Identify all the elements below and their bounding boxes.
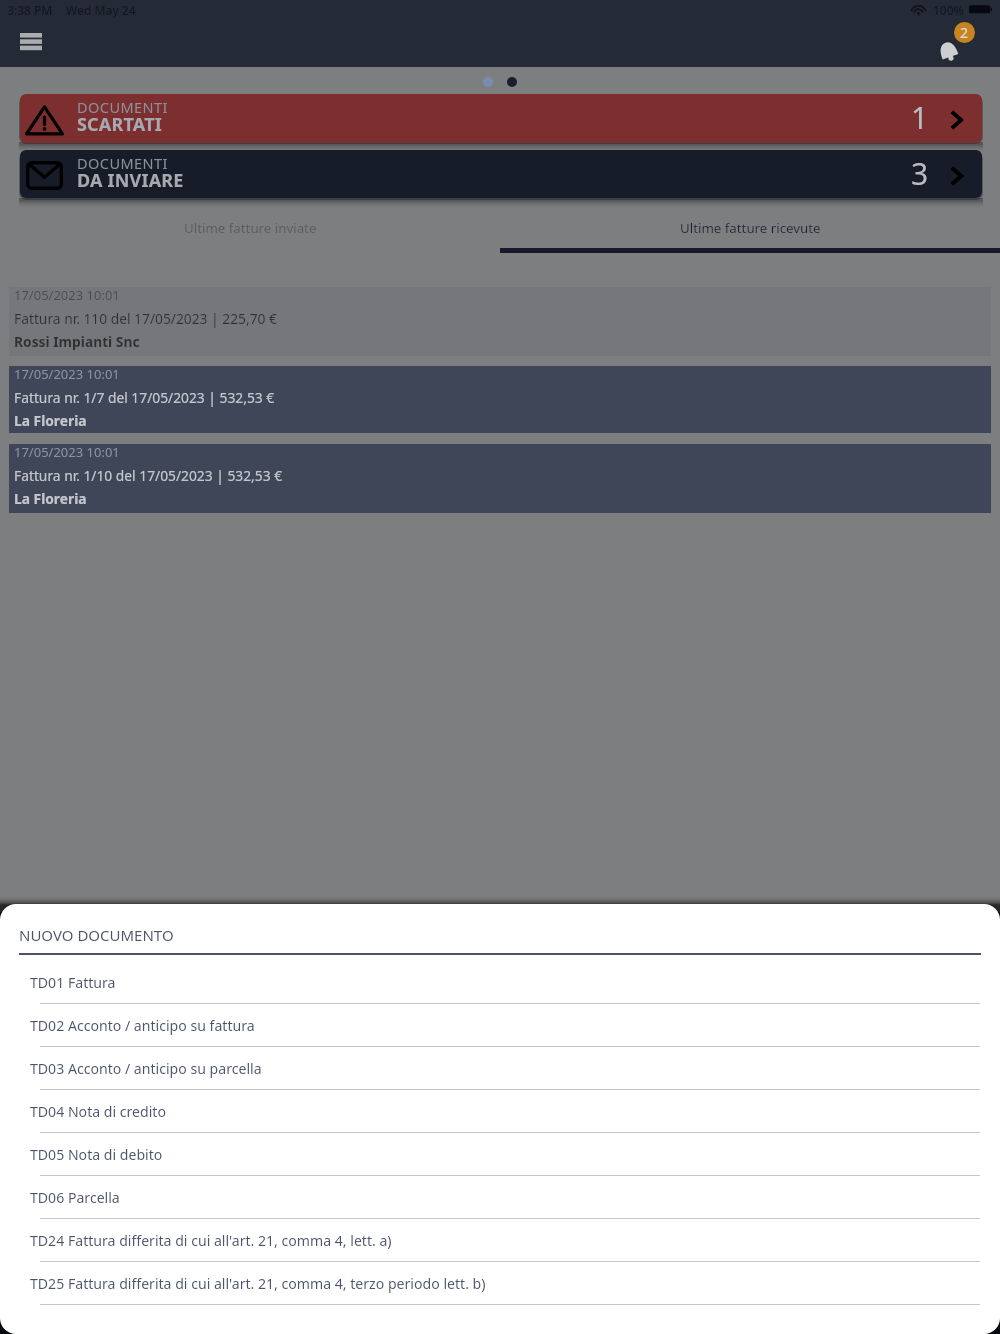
button[interactable]: Ultime fatture ricevute bbox=[500, 210, 1000, 258]
staticText: DA INVIARE bbox=[77, 168, 184, 193]
staticText: 3 bbox=[911, 153, 929, 194]
button[interactable]: TD02 Acconto / anticipo su fattura bbox=[0, 1004, 1000, 1047]
staticText: NUOVO DOCUMENTO bbox=[19, 925, 174, 945]
button[interactable]: Ultime fatture inviate bbox=[0, 210, 500, 258]
staticText: TD05 Nota di debito bbox=[30, 1145, 163, 1164]
staticText: TD01 Fattura bbox=[30, 973, 116, 992]
staticText: TD24 Fattura differita di cui all'art. 2… bbox=[30, 1231, 392, 1250]
button[interactable]: Notifications bbox=[939, 20, 985, 66]
staticText: La Floreria bbox=[14, 489, 87, 508]
staticText: 17/05/2023 10:01 bbox=[14, 286, 120, 304]
staticText: TD03 Acconto / anticipo su parcella bbox=[30, 1059, 262, 1078]
button[interactable]: TD03 Acconto / anticipo su parcella bbox=[0, 1047, 1000, 1090]
button[interactable]: TD25 Fattura differita di cui all'art. 2… bbox=[0, 1262, 1000, 1305]
staticText: 17/05/2023 10:01 bbox=[14, 365, 120, 383]
staticText: TD25 Fattura differita di cui all'art. 2… bbox=[30, 1274, 486, 1293]
staticText: Fattura nr. 1/10 del 17/05/2023 | 532,53… bbox=[14, 466, 283, 485]
button[interactable]: 17/05/2023 10:01 bbox=[9, 444, 991, 513]
button[interactable]: TD24 Fattura differita di cui all'art. 2… bbox=[0, 1219, 1000, 1262]
button[interactable]: TD06 Parcella bbox=[0, 1176, 1000, 1219]
staticText: Rossi Impianti Snc bbox=[14, 332, 140, 351]
button[interactable]: Menu bbox=[13, 26, 49, 58]
staticText: TD02 Acconto / anticipo su fattura bbox=[30, 1016, 255, 1035]
staticText: La Floreria bbox=[14, 411, 87, 430]
staticText: Ultime fatture inviate bbox=[184, 219, 317, 237]
staticText: TD06 Parcella bbox=[30, 1188, 120, 1207]
staticText: 3:38 PM bbox=[7, 2, 53, 18]
staticText: 100% bbox=[933, 2, 964, 18]
button[interactable]: TD04 Nota di credito bbox=[0, 1090, 1000, 1133]
button[interactable]: TD01 Fattura bbox=[0, 961, 1000, 1004]
button[interactable]: 17/05/2023 10:01 bbox=[9, 366, 991, 433]
button[interactable]: TD05 Nota di debito bbox=[0, 1133, 1000, 1176]
staticText: DOCUMENTI bbox=[77, 153, 168, 173]
staticText: 1 bbox=[911, 97, 929, 138]
staticText: Wed May 24 bbox=[66, 2, 136, 18]
staticText: Ultime fatture ricevute bbox=[680, 219, 821, 237]
staticText: SCARTATI bbox=[77, 112, 163, 137]
staticText: TD04 Nota di credito bbox=[30, 1102, 166, 1121]
staticText: 2 bbox=[960, 23, 969, 42]
staticText: DOCUMENTI bbox=[77, 97, 168, 117]
button[interactable]: DOCUMENTI bbox=[20, 150, 982, 198]
staticText: 17/05/2023 10:01 bbox=[14, 443, 120, 461]
button[interactable]: 17/05/2023 10:01 bbox=[9, 287, 991, 356]
button[interactable]: DOCUMENTI bbox=[20, 94, 982, 143]
staticText: Fattura nr. 110 del 17/05/2023 | 225,70 … bbox=[14, 309, 277, 328]
staticText: Fattura nr. 1/7 del 17/05/2023 | 532,53 … bbox=[14, 388, 275, 407]
